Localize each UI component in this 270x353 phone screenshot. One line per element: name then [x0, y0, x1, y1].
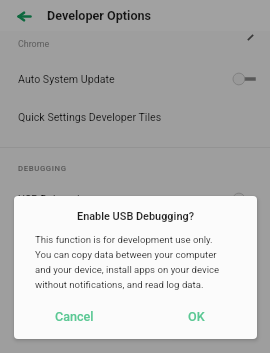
staticText: Chrome [18, 39, 50, 49]
button[interactable]: OK [135, 299, 257, 333]
staticText: This function is for development use onl… [35, 234, 220, 291]
button[interactable]: Cancel [14, 299, 135, 333]
staticText: Developer Options [47, 8, 152, 23]
staticText: Quick Settings Developer Tiles [18, 111, 162, 123]
staticText: Enable USB Debugging? [14, 210, 257, 223]
button[interactable]: Back [11, 3, 37, 29]
staticText: DEBUGGING [18, 164, 67, 173]
button[interactable]: Quick Settings Developer Tiles [0, 101, 270, 133]
button[interactable]: Chrome [0, 31, 270, 57]
staticText: OK [188, 309, 205, 324]
staticText: Cancel [55, 309, 94, 324]
button[interactable]: USB Debugging [0, 188, 270, 210]
staticText: USB Debugging [18, 193, 92, 205]
button[interactable]: Auto System Update [0, 57, 270, 101]
staticText: Auto System Update [18, 73, 115, 85]
